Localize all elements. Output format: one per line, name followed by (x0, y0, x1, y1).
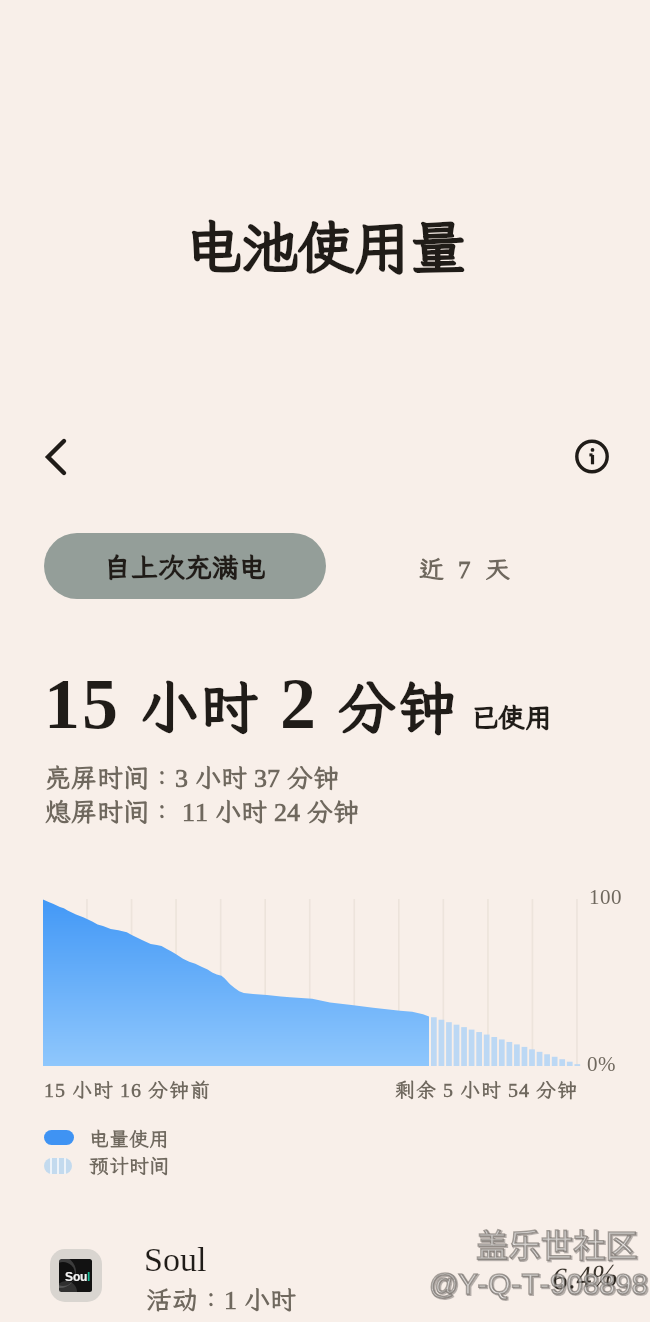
button[interactable]: Back (33, 432, 85, 484)
button[interactable] (44, 533, 326, 599)
button[interactable] (30, 1240, 620, 1320)
button[interactable] (400, 533, 540, 599)
button[interactable]: Information (567, 432, 619, 484)
